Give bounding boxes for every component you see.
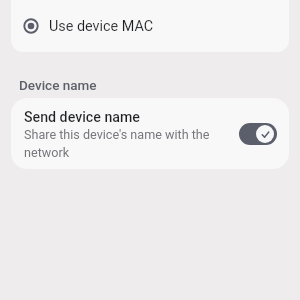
staticText: Use device MAC [49, 18, 154, 35]
button[interactable]: Send device name toggle [239, 123, 277, 145]
staticText: Device name [19, 77, 97, 93]
button[interactable]: Use device MAC selected [11, 0, 289, 52]
button[interactable]: Send device name [11, 98, 289, 169]
staticText: Send device name [24, 108, 140, 125]
other: Use device MAC selected [23, 18, 39, 34]
staticText: Share this device's name with the networ… [24, 125, 233, 161]
